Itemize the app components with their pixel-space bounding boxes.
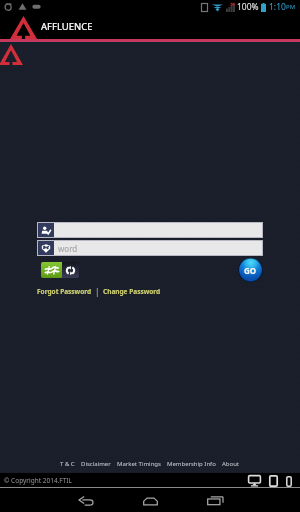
button[interactable]: Market Timings [114,460,164,468]
staticText: Forgot Password [37,287,92,296]
staticText: PM [286,3,296,11]
button[interactable]: Membership Info [164,460,219,468]
staticText: 1:10 [269,1,286,13]
button[interactable]: Home [118,488,183,512]
staticText: T & C [60,460,75,468]
button[interactable]: GO [238,258,263,282]
staticText: © Copyright 2014.FTIL [4,476,72,485]
staticText: Change Password [103,287,161,296]
staticText: 100% [237,1,259,13]
staticText: AFFLUENCE [41,20,93,33]
button[interactable]: Disclaimer [78,460,114,468]
staticText: word [58,243,78,254]
staticText: About [222,460,240,468]
button[interactable]: Change Password [103,287,161,296]
button[interactable]: Back [53,488,118,512]
button[interactable]: T & C [57,460,78,468]
button[interactable]: Forgot Password [37,287,92,296]
staticText: GO [244,265,257,276]
button[interactable]: Refresh captcha [62,262,79,278]
button[interactable]: About [219,460,243,468]
button[interactable]: Recents [183,488,248,512]
staticText: | [95,286,100,297]
button[interactable]: word [38,241,262,255]
staticText: Membership Info [167,460,216,468]
staticText: Market Timings [117,460,161,468]
staticText: Disclaimer [81,460,111,468]
button[interactable] [38,223,262,237]
